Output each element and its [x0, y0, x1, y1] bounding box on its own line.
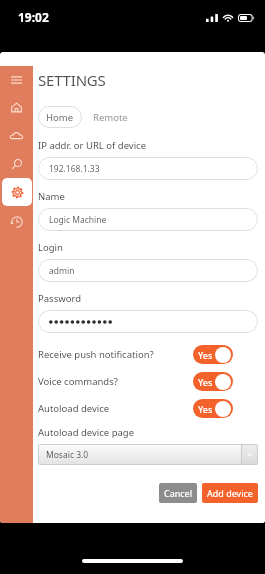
- button[interactable]: Menu: [0, 74, 33, 85]
- staticText: Login: [38, 241, 63, 254]
- button[interactable]: Yes: [193, 345, 233, 364]
- staticText: Name: [38, 190, 65, 203]
- button[interactable]: Home: [0, 102, 33, 113]
- staticText: 192.168.1.33: [49, 163, 100, 175]
- staticText: 19:02: [18, 9, 49, 25]
- staticText: Voice commands?: [38, 375, 118, 388]
- staticText: Add device: [207, 487, 253, 499]
- staticText: Receive push notification?: [38, 348, 154, 361]
- staticText: Password: [38, 292, 81, 305]
- staticText: Yes: [198, 403, 213, 415]
- button[interactable]: Cloud: [0, 130, 33, 141]
- staticText: admin: [49, 265, 75, 277]
- button[interactable]: admin: [38, 259, 258, 282]
- button[interactable]: Remote: [82, 106, 139, 128]
- staticText: Autoload device: [38, 402, 110, 415]
- button[interactable]: Home: [38, 106, 82, 128]
- staticText: SETTINGS: [38, 70, 106, 90]
- button[interactable]: Logic Machine: [38, 208, 258, 231]
- staticText: Cancel: [164, 487, 193, 499]
- button[interactable]: Yes: [193, 372, 233, 391]
- button[interactable]: Add device: [202, 483, 258, 503]
- button[interactable]: History: [0, 216, 33, 227]
- staticText: Yes: [198, 349, 213, 361]
- staticText: Mosaic 3.0: [46, 449, 89, 461]
- button[interactable]: [38, 310, 258, 333]
- button[interactable]: Mosaic 3.0: [38, 444, 258, 465]
- button[interactable]: Settings: [2, 178, 32, 206]
- button[interactable]: Search: [0, 159, 33, 170]
- staticText: Autoload device page: [38, 426, 135, 439]
- staticText: Yes: [198, 376, 213, 388]
- staticText: Home: [46, 111, 74, 124]
- staticText: IP addr. or URL of device: [38, 139, 147, 152]
- staticText: Logic Machine: [49, 214, 107, 226]
- button[interactable]: Cancel: [159, 483, 197, 503]
- staticText: Remote: [93, 111, 128, 124]
- button[interactable]: Yes: [193, 399, 233, 418]
- button[interactable]: 192.168.1.33: [38, 157, 258, 180]
